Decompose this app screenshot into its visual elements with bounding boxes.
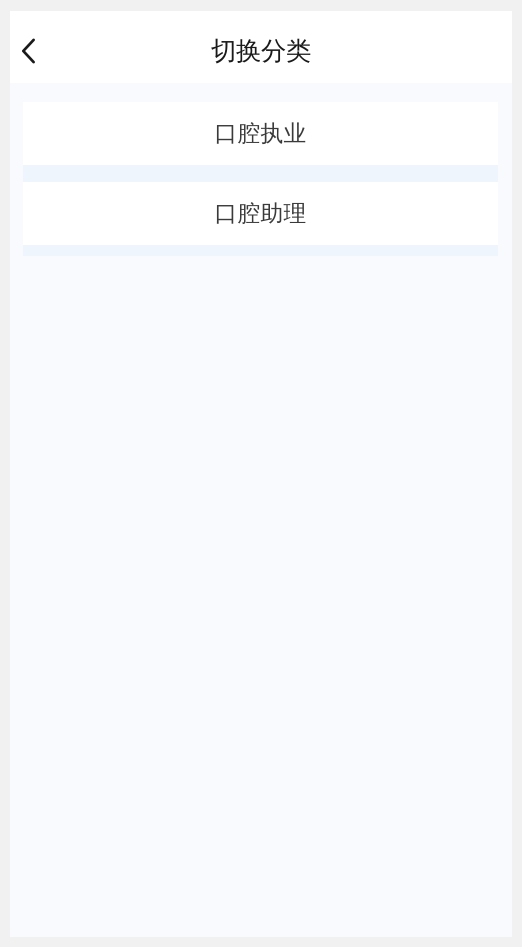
- staticText: 切换分类: [211, 35, 311, 66]
- staticText: 口腔助理: [214, 200, 306, 227]
- button[interactable]: 口腔执业: [23, 102, 498, 165]
- button[interactable]: Back: [10, 29, 54, 73]
- button[interactable]: 口腔助理: [23, 182, 498, 245]
- staticText: 口腔执业: [214, 120, 306, 147]
